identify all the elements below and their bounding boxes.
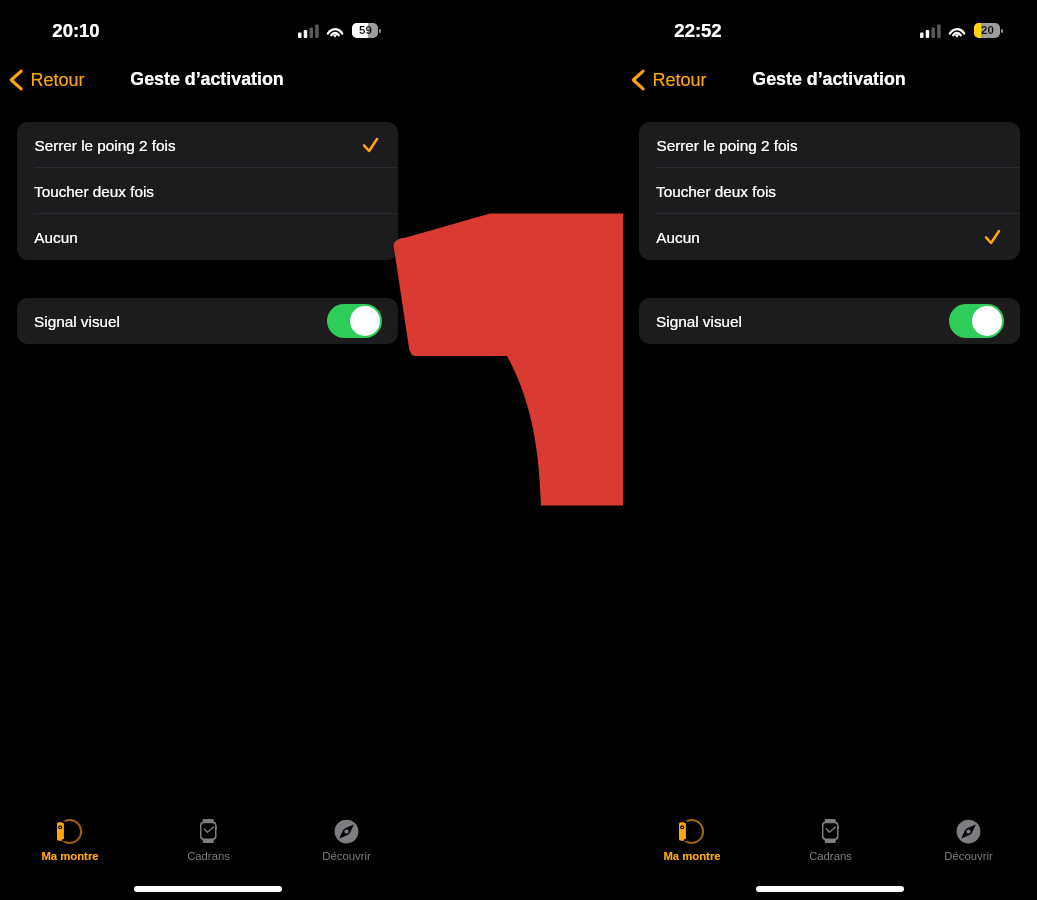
button[interactable]: Découvrir [277, 818, 415, 870]
staticText: Découvrir [944, 850, 993, 863]
staticText: Retour [30, 70, 85, 90]
staticText: 59 [359, 24, 372, 37]
staticText: Cadrans [187, 850, 230, 863]
button[interactable]: Cadrans [761, 818, 899, 870]
staticText: 22:52 [674, 20, 722, 41]
staticText: 20:10 [52, 20, 100, 41]
button[interactable]: Retour [628, 67, 711, 93]
staticText: Cadrans [809, 850, 852, 863]
staticText: Aucun [34, 229, 78, 246]
staticText: Retour [652, 70, 707, 90]
staticText: Ma montre [41, 850, 99, 863]
staticText: Signal visuel [656, 313, 742, 330]
button[interactable]: Serrer le poing 2 fois [639, 122, 1020, 168]
staticText: 20 [981, 24, 994, 37]
button[interactable]: Toucher deux fois [639, 168, 1020, 214]
button[interactable]: Serrer le poing 2 fois [17, 122, 398, 168]
staticText: Découvrir [322, 850, 371, 863]
button[interactable]: Toucher deux fois [17, 168, 398, 214]
button[interactable]: Ma montre [0, 818, 139, 870]
staticText: Geste d’activation [752, 69, 906, 89]
staticText: Serrer le poing 2 fois [656, 137, 798, 154]
button[interactable]: Cadrans [139, 818, 277, 870]
staticText: Aucun [656, 229, 700, 246]
button[interactable]: Signal visuel [17, 298, 398, 344]
staticText: Ma montre [663, 850, 721, 863]
staticText: Serrer le poing 2 fois [34, 137, 176, 154]
staticText: Toucher deux fois [656, 183, 776, 200]
button[interactable]: Ma montre [622, 818, 761, 870]
button[interactable]: Aucun [17, 214, 398, 260]
button[interactable]: Aucun [639, 214, 1020, 260]
staticText: Toucher deux fois [34, 183, 154, 200]
staticText: Geste d’activation [130, 69, 284, 89]
button[interactable]: Retour [6, 67, 89, 93]
button[interactable]: Découvrir [899, 818, 1037, 870]
button[interactable]: Signal visuel [639, 298, 1020, 344]
staticText: Signal visuel [34, 313, 120, 330]
